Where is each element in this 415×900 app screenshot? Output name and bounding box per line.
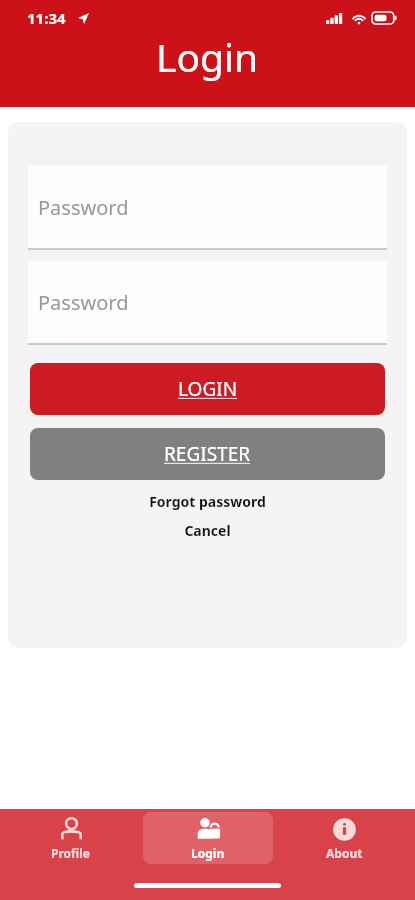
staticText: About xyxy=(326,845,363,861)
staticText: REGISTER xyxy=(164,441,251,467)
button[interactable]: Cancel xyxy=(8,521,407,540)
button[interactable]: Forgot password xyxy=(8,492,407,511)
button[interactable]: LOGIN xyxy=(30,363,385,415)
staticText: Profile xyxy=(51,845,91,861)
staticText: Login xyxy=(191,845,225,861)
staticText: LOGIN xyxy=(178,376,238,402)
staticText: Forgot password xyxy=(149,492,266,511)
staticText: Cancel xyxy=(184,521,231,540)
button[interactable]: About xyxy=(279,812,409,864)
button[interactable]: Password xyxy=(28,166,387,250)
button[interactable]: REGISTER xyxy=(30,428,385,480)
staticText: 11:34 xyxy=(27,8,66,28)
staticText: Login xyxy=(156,30,259,83)
button[interactable]: Password xyxy=(28,261,387,345)
staticText: Password xyxy=(38,194,129,221)
staticText: Password xyxy=(38,289,129,316)
button[interactable]: Login xyxy=(143,812,273,864)
button[interactable]: Profile xyxy=(6,812,136,864)
